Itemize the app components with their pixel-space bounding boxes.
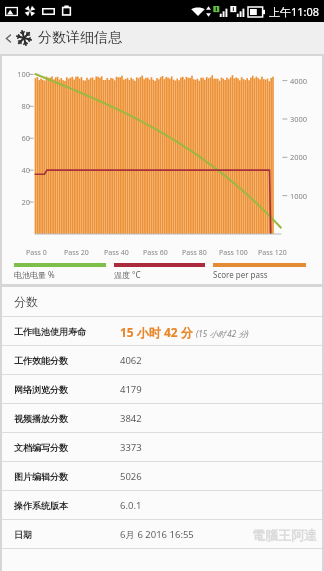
staticText: 1000 [290,191,322,201]
button[interactable]: 视频播放分数 [2,404,322,433]
staticText: Score per pass [213,269,268,280]
staticText: 4179 [120,383,142,396]
staticText: 工作效能分数 [14,355,120,366]
staticText: Pass 20 [64,248,89,258]
button[interactable]: 工作电池使用寿命 [2,317,322,346]
staticText: 5026 [120,470,142,483]
staticText: Pass 80 [182,248,207,258]
staticText: 3000 [290,114,322,124]
staticText: 20 [4,197,30,207]
staticText: Pass 40 [104,248,129,258]
staticText: Pass 60 [143,248,168,258]
button[interactable]: 图片编辑分数 [2,462,322,491]
staticText: 4062 [120,354,142,367]
staticText: 上午11:08 [269,4,320,19]
staticText: 100 [4,69,30,79]
staticText: 6月 6 2016 16:55 [120,528,194,541]
button[interactable]: 网络浏览分数 [2,375,322,404]
staticText: 6.0.1 [120,499,142,512]
staticText: 视频播放分数 [14,413,120,424]
staticText: 工作电池使用寿命 [14,326,120,337]
button[interactable]: 工作效能分数 [2,346,322,375]
button[interactable]: 操作系统版本 [2,491,322,520]
staticText: 2000 [290,152,322,162]
staticText: 3842 [120,412,142,425]
staticText: 文档编写分数 [14,442,120,453]
staticText: (15 小时 42 分) [196,328,249,339]
button[interactable]: 日期 [2,520,322,549]
staticText: 分数 [14,294,38,309]
staticText: 图片编辑分数 [14,471,120,482]
staticText: 3373 [120,441,142,454]
staticText: 40 [4,165,30,175]
button[interactable]: 文档编写分数 [2,433,322,462]
staticText: 操作系统版本 [14,500,120,511]
staticText: 网络浏览分数 [14,384,120,395]
button[interactable]: Back [0,22,16,54]
staticText: Pass 0 [26,248,47,258]
staticText: 80 [4,101,30,111]
staticText: 日期 [14,529,120,540]
staticText: 电池电量 % [14,269,55,280]
staticText: 電腦王阿達 [252,527,317,543]
staticText: 60 [4,133,30,143]
staticText: 分数详细信息 [38,29,122,47]
staticText: Pass 120 [258,248,287,258]
staticText: Pass 100 [219,248,248,258]
staticText: 4000 [290,76,322,86]
staticText: 15 小时 42 分 [120,324,193,340]
staticText: 温度 °C [114,269,141,280]
